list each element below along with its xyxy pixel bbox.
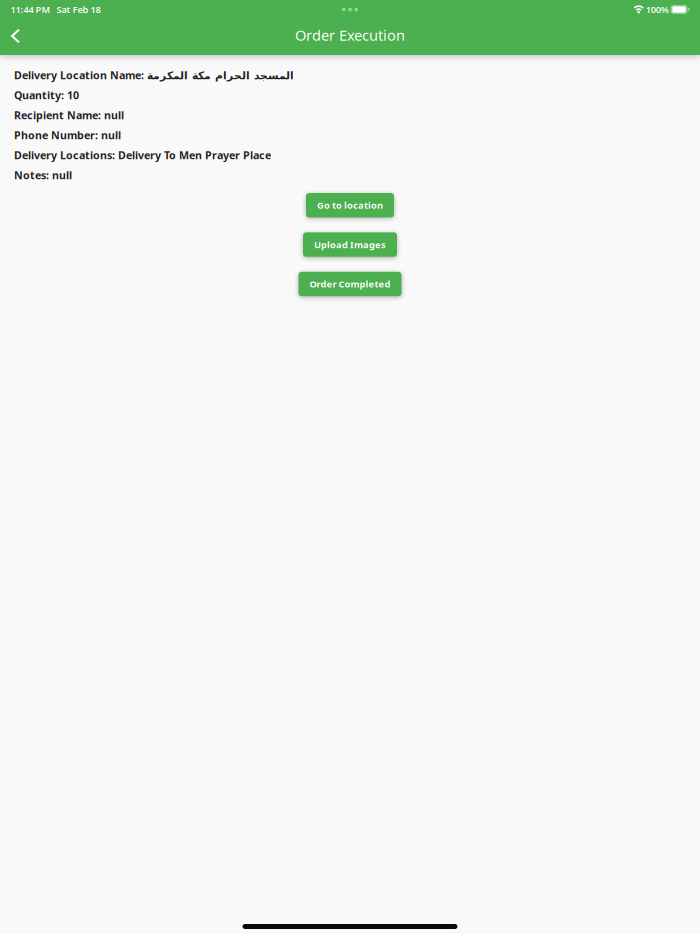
- button[interactable]: Back: [0, 21, 31, 53]
- staticText: Recipient Name: null: [14, 108, 124, 122]
- staticText: Upload Images: [314, 238, 386, 251]
- button[interactable]: Order Completed: [298, 272, 401, 296]
- staticText: Order Execution: [295, 25, 405, 45]
- staticText: Quantity: 10: [14, 88, 79, 102]
- staticText: Order Completed: [309, 278, 390, 290]
- staticText: 11:44 PM Sat Feb 18: [10, 3, 100, 16]
- staticText: Delivery Location Name: المسجد الحرام مك…: [14, 68, 294, 82]
- staticText: Notes: null: [14, 168, 72, 182]
- staticText: Phone Number: null: [14, 128, 121, 142]
- staticText: Go to location: [317, 199, 383, 211]
- button[interactable]: Go to location: [306, 193, 394, 217]
- staticText: 100%: [644, 3, 671, 16]
- button[interactable]: Upload Images: [303, 232, 397, 257]
- staticText: Delivery Locations: Delivery To Men Pray…: [14, 148, 271, 162]
